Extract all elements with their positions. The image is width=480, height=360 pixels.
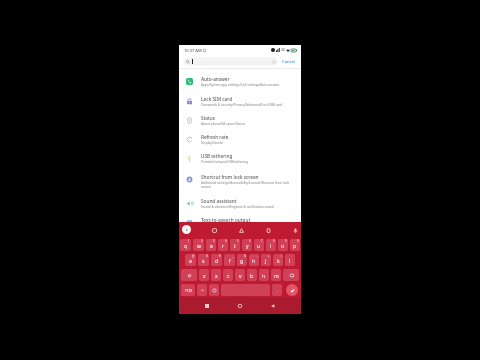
button[interactable]: Clipboard	[264, 226, 272, 234]
staticText: j	[265, 258, 267, 265]
staticText: r	[222, 243, 225, 250]
button[interactable]: Sound assistant	[185, 198, 296, 209]
staticText: q	[184, 243, 188, 250]
staticText: v	[239, 273, 242, 280]
staticText: t	[234, 243, 236, 250]
button[interactable]: USB tethering	[185, 153, 296, 164]
staticText: Cancel	[282, 59, 296, 65]
button[interactable]: 1	[180, 239, 191, 251]
staticText: Refresh rate	[201, 134, 229, 140]
staticText: (	[281, 254, 282, 258]
button[interactable]: Stickers	[210, 226, 218, 234]
button[interactable]: Period	[272, 284, 282, 296]
staticText: c	[227, 273, 230, 280]
staticText: 10:37 AM	[184, 48, 202, 53]
button[interactable]: n	[259, 269, 269, 281]
button[interactable]: Shift up	[197, 284, 207, 296]
staticText: 7	[261, 239, 263, 243]
button[interactable]: Voice input	[291, 226, 299, 234]
button[interactable]: Expand toolbar	[182, 225, 191, 234]
staticText: Sound & vibration/Ringtone & notificatio…	[201, 205, 274, 209]
button[interactable]: $	[211, 254, 222, 266]
button[interactable]: Theme	[237, 226, 245, 234]
button[interactable]: Emoji	[209, 284, 219, 296]
button[interactable]: 2	[193, 239, 204, 251]
button[interactable]: +	[261, 254, 271, 266]
button[interactable]: -	[249, 254, 259, 266]
button[interactable]: &	[237, 254, 247, 266]
staticText: #	[206, 254, 208, 258]
button[interactable]: @	[185, 254, 196, 266]
button[interactable]: Shortcut from lock screen	[185, 174, 296, 188]
button[interactable]: Lock SIM card	[185, 96, 296, 107]
staticText: Shortcut from lock screen	[201, 174, 259, 180]
staticText: About phone/All specs/Status	[201, 122, 246, 126]
button[interactable]: 5	[230, 239, 240, 251]
button[interactable]: 8	[266, 239, 276, 251]
staticText: ?123	[185, 289, 192, 293]
staticText: n	[262, 273, 266, 280]
staticText: i	[270, 243, 272, 250]
button[interactable]: Enter	[286, 284, 298, 296]
button[interactable]: ?123	[181, 284, 195, 296]
staticText: 5	[237, 239, 239, 243]
button[interactable]: Cancel	[281, 57, 297, 67]
staticText: d	[215, 258, 219, 265]
button[interactable]: _	[224, 254, 235, 266]
button[interactable]: c	[223, 269, 233, 281]
button[interactable]: Refresh rate	[185, 134, 296, 145]
staticText: x	[215, 273, 218, 280]
button[interactable]: 6	[242, 239, 252, 251]
button[interactable]: Text-to-speech output	[185, 217, 296, 222]
staticText: Apps/System app settings/Call settings/A…	[201, 83, 280, 87]
staticText: s	[202, 258, 205, 265]
button[interactable]: 0	[290, 239, 300, 251]
button[interactable]: z	[199, 269, 209, 281]
staticText: $	[219, 254, 221, 258]
staticText: 2	[201, 239, 203, 243]
staticText: b	[250, 273, 254, 280]
staticText: Status	[201, 115, 216, 121]
button[interactable]: 4	[218, 239, 228, 251]
staticText: Display/Screen	[201, 141, 224, 145]
staticText: Text-to-speech output	[201, 217, 251, 222]
staticText: e	[210, 243, 213, 250]
staticText: w	[197, 243, 201, 250]
staticText: 3	[213, 239, 215, 243]
button[interactable]: v	[235, 269, 245, 281]
button[interactable]: m	[271, 269, 281, 281]
staticText: 9	[285, 239, 287, 243]
staticText: USB tethering	[201, 153, 233, 159]
button[interactable]: Home	[235, 301, 245, 311]
staticText: 6	[249, 239, 251, 243]
staticText: Passwords & security/Privacy/Advanced/Lo…	[201, 103, 283, 107]
button[interactable]: x	[211, 269, 221, 281]
staticText: Sound assistant	[201, 198, 237, 204]
button[interactable]: Back	[268, 301, 278, 311]
button[interactable]: l	[285, 254, 295, 266]
staticText: Portable hotspot/USB tethering	[201, 160, 249, 164]
button[interactable]	[184, 57, 278, 66]
button[interactable]: #	[198, 254, 209, 266]
button[interactable]: b	[247, 269, 257, 281]
button[interactable]: 7	[254, 239, 264, 251]
staticText: z	[203, 273, 206, 280]
button[interactable]: Shift	[181, 269, 197, 281]
staticText: +	[268, 254, 270, 258]
button[interactable]: Recents	[202, 301, 212, 311]
button[interactable]: Auto-answer	[185, 76, 296, 87]
staticText: &	[244, 254, 246, 258]
staticText: Lock SIM card	[201, 96, 233, 102]
staticText: k	[277, 258, 280, 265]
staticText: g	[240, 258, 244, 265]
button[interactable]: 9	[278, 239, 288, 251]
staticText: u	[257, 243, 261, 250]
staticText: _	[232, 254, 234, 258]
button[interactable]: 3	[206, 239, 216, 251]
button[interactable]: Backspace	[283, 269, 299, 281]
staticText: m	[274, 273, 279, 280]
staticText: o	[281, 243, 285, 250]
button[interactable]: Status	[185, 115, 296, 126]
button[interactable]: (	[273, 254, 283, 266]
